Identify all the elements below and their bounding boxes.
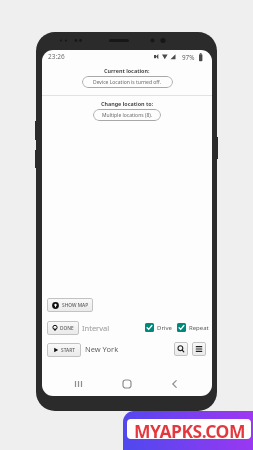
button[interactable] (174, 342, 188, 356)
staticText: MYAPKS.COM (134, 419, 245, 439)
staticText: DONE (60, 325, 74, 332)
staticText: Current location: (104, 67, 150, 74)
button[interactable] (192, 342, 206, 356)
staticText: Change location to: (101, 100, 154, 107)
staticText: Multiple locations (8). (102, 112, 153, 119)
staticText: SHOW MAP (62, 302, 89, 309)
staticText: START (61, 347, 75, 354)
staticText: 97% (182, 53, 195, 62)
button[interactable]: SHOW MAP (47, 298, 93, 312)
staticText: 23:26 (48, 52, 65, 61)
staticText: Drive (157, 324, 172, 332)
button[interactable]: MYAPKS.COM (123, 411, 253, 450)
staticText: Repeat (189, 324, 209, 332)
button[interactable]: Device Location is turned off. (82, 76, 173, 88)
button[interactable]: START (47, 343, 81, 357)
staticText: New York (85, 344, 119, 354)
button[interactable]: Drive (145, 323, 172, 332)
button[interactable]: DONE (47, 321, 79, 335)
staticText: Interval (82, 323, 110, 333)
button[interactable]: Multiple locations (8). (93, 109, 161, 121)
staticText: Device Location is turned off. (93, 79, 162, 86)
button[interactable]: Repeat (177, 323, 209, 332)
